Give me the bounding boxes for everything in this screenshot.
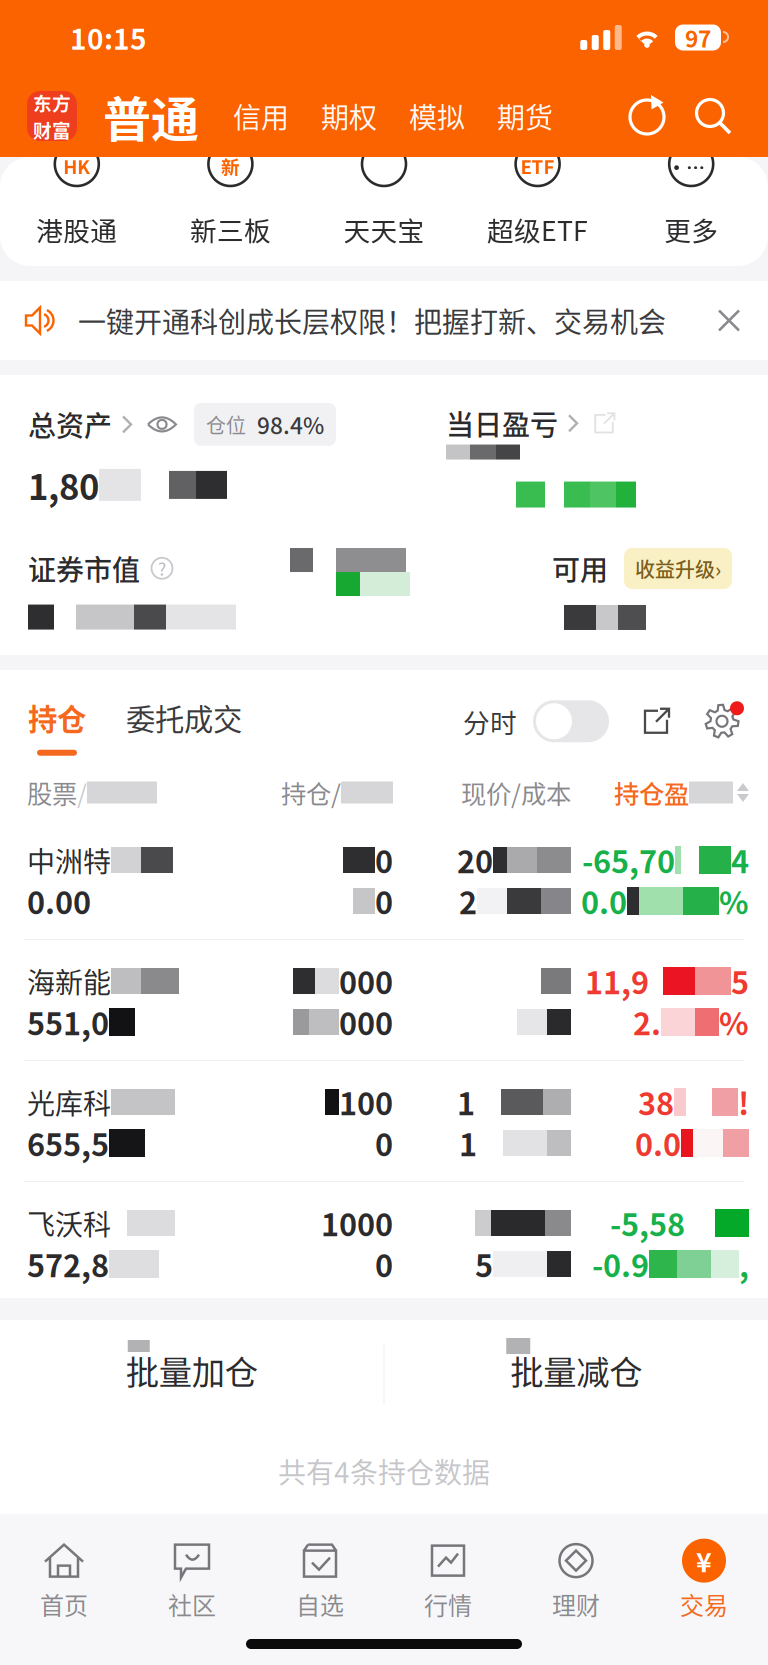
button[interactable]: 批量加仓 xyxy=(0,1320,383,1428)
button[interactable]: 自选 xyxy=(256,1536,384,1628)
staticText: 0 xyxy=(375,1121,393,1165)
button[interactable]: ••• xyxy=(614,165,768,249)
staticText: 信用 xyxy=(233,96,289,136)
staticText: 10:15 xyxy=(70,17,147,58)
button[interactable]: Settings xyxy=(702,701,742,741)
staticText: 一键开通科创成长层权限！把握打新、交易机会 xyxy=(78,300,666,341)
staticText: / xyxy=(77,774,87,811)
button[interactable]: 首页 xyxy=(0,1536,128,1628)
staticText: 期权 xyxy=(321,96,377,136)
staticText: 1 xyxy=(457,1080,475,1124)
staticText: ¥ xyxy=(696,1541,712,1580)
staticText: 批量减仓 xyxy=(510,1346,642,1394)
staticText: 20 xyxy=(457,838,493,882)
staticText: 4 xyxy=(731,838,749,882)
staticText: 655,5 xyxy=(27,1121,109,1165)
button[interactable]: 信用 xyxy=(217,85,305,147)
button[interactable]: 委托成交 xyxy=(126,680,242,756)
staticText: 0 xyxy=(375,1242,393,1286)
staticText: 超级ETF xyxy=(487,210,588,249)
button[interactable]: 当日盈亏 xyxy=(446,403,580,443)
staticText: -65,70 xyxy=(582,838,675,882)
button[interactable]: 社区 xyxy=(128,1536,256,1628)
staticText: 新 xyxy=(221,152,240,179)
button[interactable]: 一键开通科创成长层权限！把握打新、交易机会 xyxy=(0,281,768,360)
button[interactable]: Refresh xyxy=(626,94,668,138)
staticText: 0.0 xyxy=(581,879,627,923)
button[interactable]: 批量减仓 xyxy=(384,1320,768,1428)
staticText: 2 xyxy=(459,879,477,923)
button[interactable] xyxy=(307,165,461,249)
staticText: 1000 xyxy=(321,1201,393,1245)
button[interactable]: 东方 xyxy=(27,91,77,141)
staticText: 海新能 xyxy=(27,961,111,1001)
staticText: 飞沃科 xyxy=(27,1203,111,1243)
staticText: 现价/成本 xyxy=(461,774,571,811)
staticText: % xyxy=(719,879,749,923)
button[interactable]: 期货 xyxy=(481,85,569,147)
staticText: 天天宝 xyxy=(343,210,424,249)
staticText: 委托成交 xyxy=(126,696,242,739)
button[interactable]: Expand xyxy=(592,411,617,436)
button[interactable]: 理财 xyxy=(512,1536,640,1628)
staticText: 总资产 xyxy=(28,404,112,445)
staticText: 收益升级› xyxy=(635,554,721,583)
staticText: 572,8 xyxy=(27,1242,109,1286)
staticText: -5,58 xyxy=(610,1201,685,1245)
button[interactable]: 普通 xyxy=(103,76,199,156)
staticText: 港股通 xyxy=(36,210,117,249)
staticText: 仓位 xyxy=(206,410,246,439)
staticText: 更多 xyxy=(664,210,718,249)
staticText: 当日盈亏 xyxy=(446,403,558,443)
button[interactable]: Hide balance xyxy=(147,412,177,436)
staticText: HK xyxy=(63,152,90,179)
staticText: 普通 xyxy=(103,81,199,151)
button[interactable]: 新 xyxy=(154,165,307,249)
staticText: 股票 xyxy=(27,774,77,811)
staticText: 551,0 xyxy=(27,1000,109,1044)
button[interactable]: Share xyxy=(641,706,672,737)
button[interactable]: 期权 xyxy=(305,85,393,147)
staticText: 模拟 xyxy=(409,96,465,136)
button[interactable]: ETF xyxy=(461,165,614,249)
staticText: 97 xyxy=(685,21,711,54)
button[interactable]: 行情 xyxy=(384,1536,512,1628)
staticText: 光库科 xyxy=(27,1082,111,1122)
staticText: 新三板 xyxy=(190,210,271,249)
staticText: 期货 xyxy=(497,96,553,136)
staticText: 5 xyxy=(731,959,749,1003)
staticText: 自选 xyxy=(296,1587,344,1621)
staticText: 11,9 xyxy=(585,959,649,1003)
staticText: 000 xyxy=(339,959,393,1003)
staticText: 理财 xyxy=(552,1587,600,1621)
staticText: 分时 xyxy=(463,702,517,741)
staticText: 首页 xyxy=(40,1587,88,1621)
staticText: 38 xyxy=(638,1080,674,1124)
button[interactable]: 分时 xyxy=(533,700,609,742)
staticText: ! xyxy=(738,1080,749,1124)
staticText: 1,80 xyxy=(28,460,99,510)
button[interactable]: 收益升级› xyxy=(624,548,732,589)
button[interactable]: ¥ xyxy=(640,1536,768,1628)
button[interactable]: 持仓 xyxy=(28,680,86,756)
staticText: 0.0 xyxy=(635,1121,681,1165)
staticText: 持仓盈 xyxy=(614,774,689,811)
staticText: 2. xyxy=(633,1000,661,1044)
staticText: 批量加仓 xyxy=(126,1346,258,1394)
staticText: 共有4条持仓数据 xyxy=(278,1451,490,1491)
staticText: 财富 xyxy=(33,116,71,143)
staticText: 社区 xyxy=(168,1587,216,1621)
staticText: 持仓 xyxy=(28,696,86,739)
button[interactable]: Search xyxy=(692,95,732,137)
button[interactable]: 模拟 xyxy=(393,85,481,147)
staticText: ETF xyxy=(521,152,555,179)
staticText: 行情 xyxy=(424,1587,472,1621)
staticText: 东方 xyxy=(33,89,71,116)
button[interactable]: HK xyxy=(0,165,154,249)
button[interactable]: 总资产 xyxy=(28,404,134,445)
staticText: -0.9 xyxy=(592,1242,649,1286)
staticText: 5 xyxy=(475,1242,493,1286)
staticText: 1 xyxy=(459,1121,477,1165)
staticText: 000 xyxy=(339,1000,393,1044)
staticText: % xyxy=(719,1000,749,1044)
